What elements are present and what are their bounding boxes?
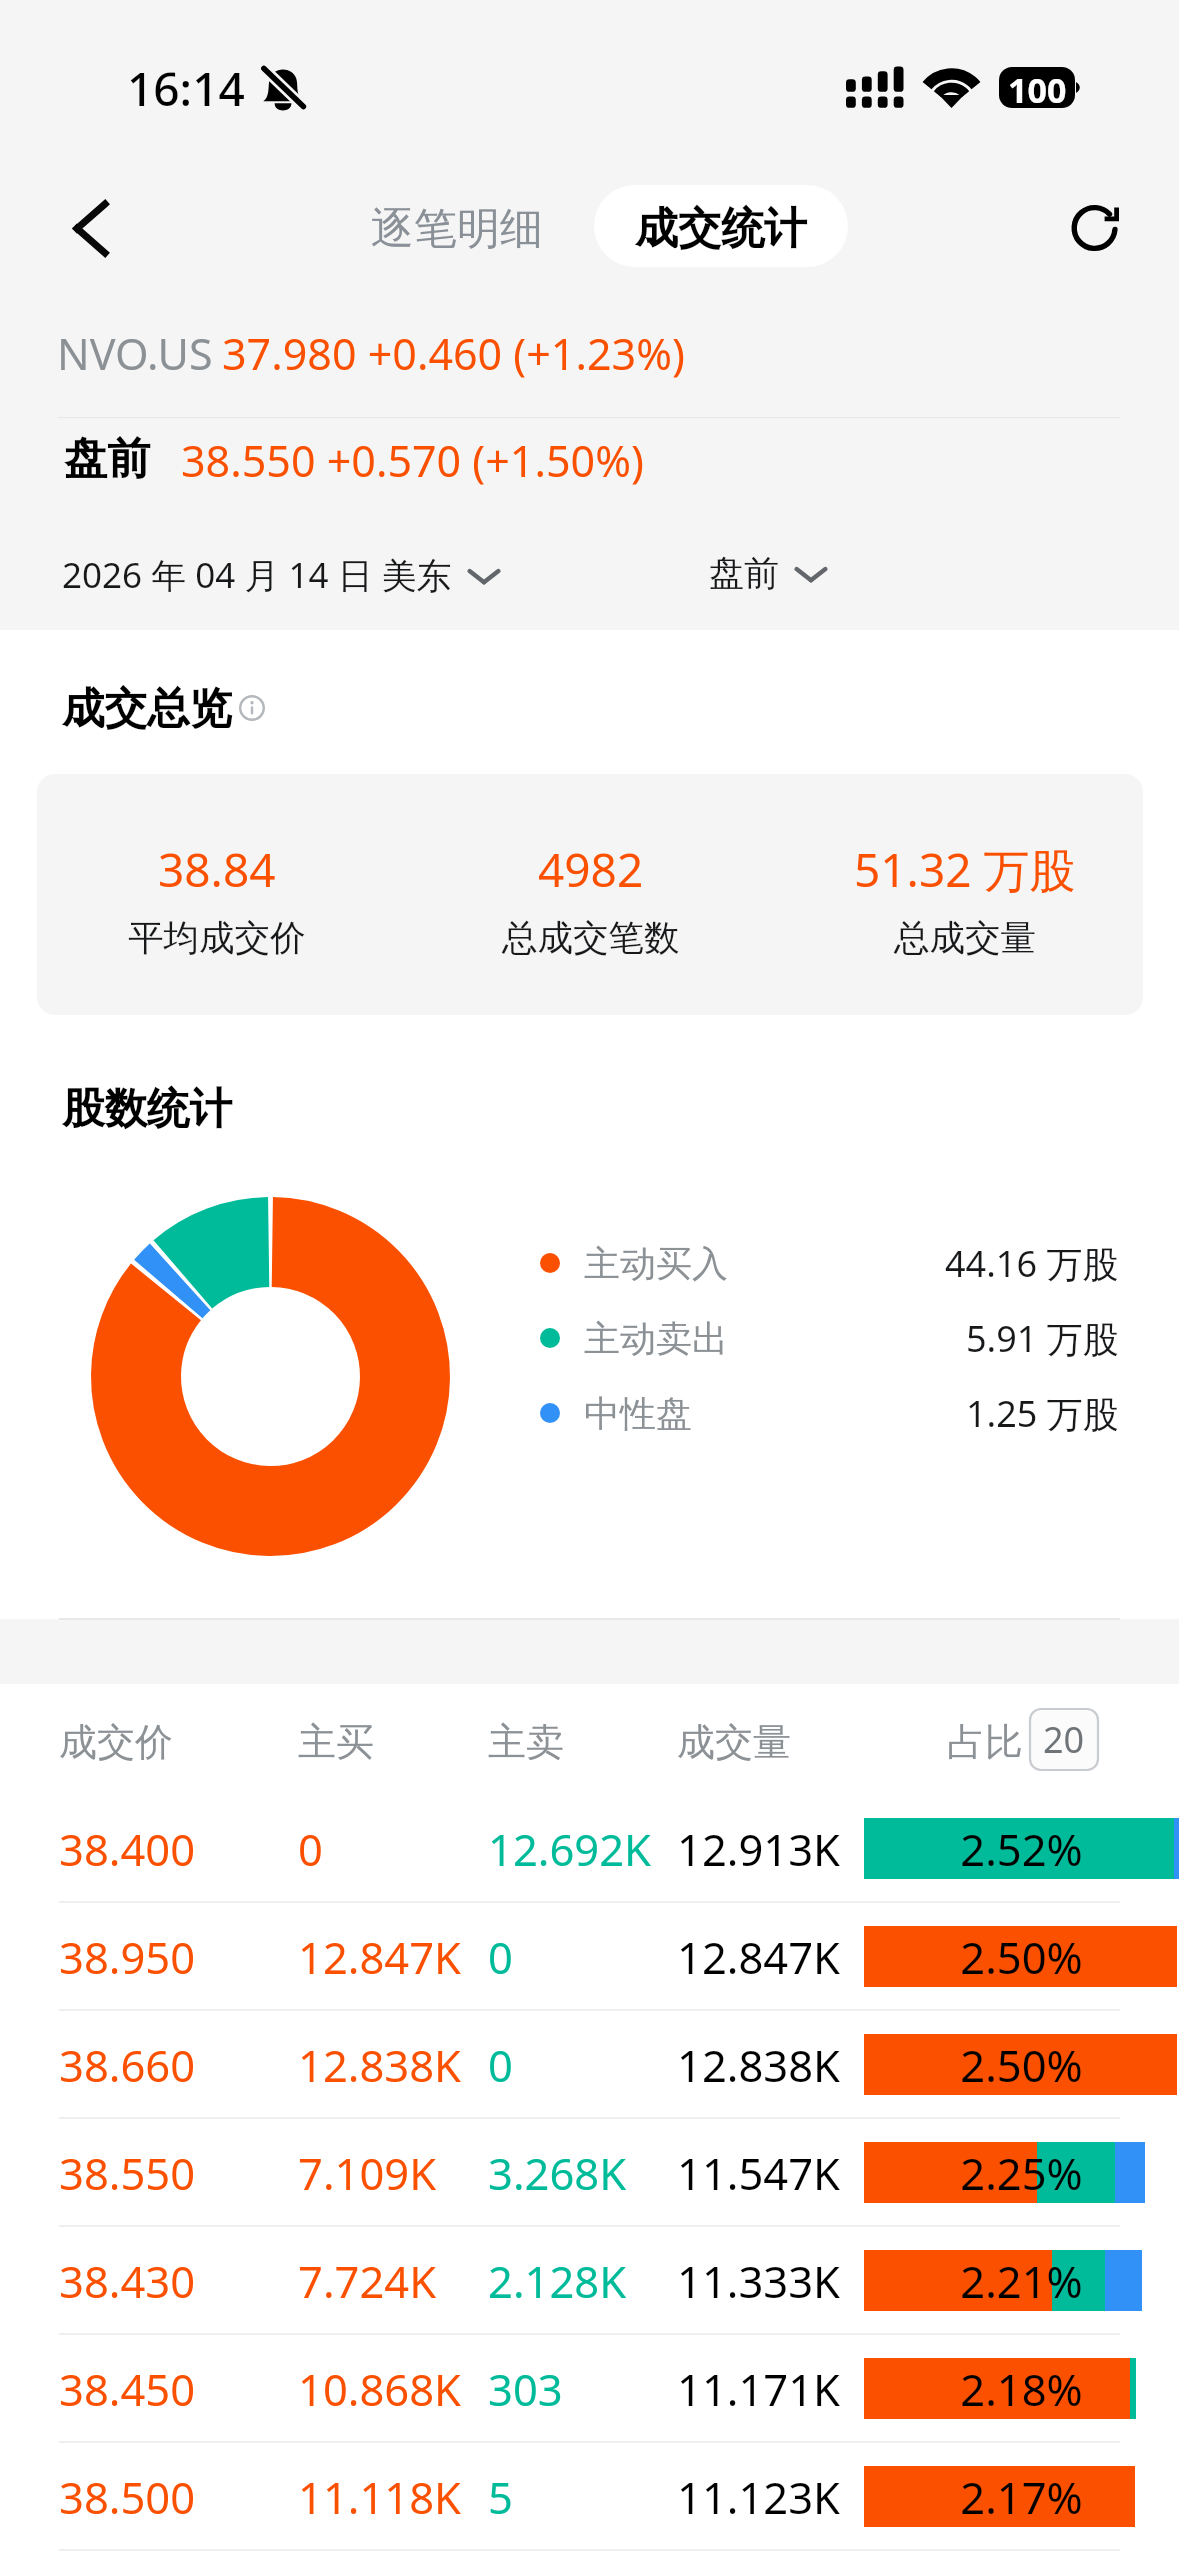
staticText: 成交价	[59, 1718, 173, 1766]
button[interactable]: 38.500	[0, 2442, 1179, 2550]
staticText: NVO.US	[57, 324, 213, 383]
staticText: 11.171K	[677, 2359, 840, 2418]
staticText: 12.847K	[298, 1927, 461, 1986]
staticText: 12.692K	[488, 1819, 651, 1878]
staticText: 38.550 +0.570 (+1.50%)	[181, 431, 644, 490]
staticText: 44.16 万股	[945, 1239, 1119, 1288]
staticText: 38.950	[59, 1927, 196, 1986]
button[interactable]: 38.950	[0, 1902, 1179, 2010]
staticText: 11.547K	[677, 2143, 840, 2202]
staticText: 平均成交价	[128, 916, 306, 961]
staticText: 38.400	[59, 1819, 196, 1878]
button[interactable]: Back	[46, 180, 142, 276]
staticText: 主卖	[488, 1718, 564, 1766]
staticText: 中性盘	[584, 1391, 692, 1436]
staticText: 7.109K	[298, 2143, 437, 2202]
staticText: 38.660	[59, 2035, 196, 2094]
button[interactable]: 成交统计	[594, 185, 848, 267]
staticText: 2.50%	[864, 1927, 1179, 1986]
button[interactable]: 盘前	[709, 551, 829, 595]
staticText: 12.838K	[677, 2035, 840, 2094]
staticText: 20	[1043, 1715, 1085, 1764]
staticText: 51.32 万股	[854, 838, 1076, 901]
staticText: 11.123K	[677, 2467, 840, 2526]
staticText: 2.128K	[488, 2251, 627, 2310]
staticText: 38.84	[158, 838, 276, 901]
staticText: 11.333K	[677, 2251, 840, 2310]
staticText: 16:14	[127, 57, 245, 120]
staticText: 占比	[947, 1718, 1023, 1766]
staticText: 7.724K	[298, 2251, 437, 2310]
staticText: 38.500	[59, 2467, 196, 2526]
staticText: 总成交量	[894, 916, 1036, 961]
staticText: 0	[298, 1819, 323, 1878]
staticText: 2.18%	[864, 2359, 1179, 2418]
staticText: 38.550	[59, 2143, 196, 2202]
staticText: 0	[488, 2035, 513, 2094]
staticText: 2.52%	[864, 1819, 1179, 1878]
staticText: 5.91 万股	[966, 1314, 1119, 1363]
staticText: 总成交笔数	[502, 916, 680, 961]
button[interactable]: 38.450	[0, 2334, 1179, 2442]
staticText: 5	[488, 2467, 513, 2526]
staticText: 4982	[538, 838, 644, 901]
button[interactable]: 38.430	[0, 2226, 1179, 2334]
staticText: 38.430	[59, 2251, 196, 2310]
staticText: 盘前	[64, 432, 150, 486]
button[interactable]: 38.400	[0, 1794, 1179, 1902]
staticText: 2.21%	[864, 2251, 1179, 2310]
button[interactable]: 38.660	[0, 2010, 1179, 2118]
staticText: 主动买入	[584, 1241, 728, 1286]
staticText: 盘前	[709, 551, 779, 595]
staticText: 成交统计	[635, 202, 807, 256]
staticText: 2.17%	[864, 2467, 1179, 2526]
button[interactable]: Info	[239, 695, 265, 721]
staticText: 12.847K	[677, 1927, 840, 1986]
staticText: 12.913K	[677, 1819, 840, 1878]
staticText: 2.25%	[864, 2143, 1179, 2202]
staticText: 0	[488, 1927, 513, 1986]
button[interactable]: 逐笔明细	[357, 189, 557, 269]
staticText: 1.25 万股	[966, 1389, 1119, 1438]
staticText: 2.50%	[864, 2035, 1179, 2094]
button[interactable]: 38.550	[0, 2118, 1179, 2226]
staticText: 3.268K	[488, 2143, 627, 2202]
staticText: 303	[488, 2359, 563, 2418]
staticText: 主动卖出	[584, 1316, 728, 1361]
staticText: 成交量	[677, 1718, 791, 1766]
staticText: 100	[1008, 67, 1067, 108]
staticText: 逐笔明细	[371, 202, 543, 256]
staticText: 成交总览	[62, 682, 232, 736]
staticText: 主买	[298, 1718, 374, 1766]
button[interactable]: 2026 年 04 月 14 日 美东	[62, 551, 502, 599]
staticText: 37.980 +0.460 (+1.23%)	[222, 324, 685, 383]
staticText: 11.118K	[298, 2467, 461, 2526]
staticText: 股数统计	[62, 1082, 232, 1136]
button[interactable]: 20	[1030, 1709, 1098, 1770]
staticText: 38.450	[59, 2359, 196, 2418]
staticText: 10.868K	[298, 2359, 461, 2418]
staticText: 12.838K	[298, 2035, 461, 2094]
button[interactable]: Refresh	[1048, 180, 1142, 274]
staticText: 2026 年 04 月 14 日 美东	[62, 551, 452, 599]
